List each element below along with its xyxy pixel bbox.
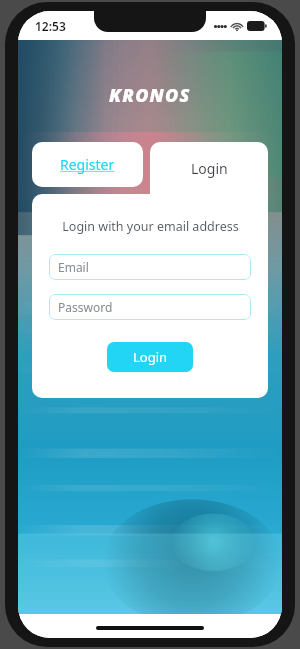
staticText: KRONOS — [109, 83, 191, 108]
button[interactable]: Login — [150, 142, 268, 194]
button[interactable]: Login — [107, 342, 193, 372]
button[interactable]: Email — [49, 254, 251, 280]
staticText: Login — [133, 348, 168, 366]
staticText: Login with your email address — [62, 218, 239, 235]
button[interactable]: Register — [32, 142, 143, 187]
staticText: Register — [60, 155, 115, 174]
staticText: Email — [58, 259, 89, 275]
other: Home indicator — [96, 626, 204, 630]
staticText: Login — [191, 159, 228, 178]
button[interactable]: Password — [49, 294, 251, 320]
staticText: Password — [58, 299, 113, 315]
staticText: 12:53 — [35, 18, 66, 34]
